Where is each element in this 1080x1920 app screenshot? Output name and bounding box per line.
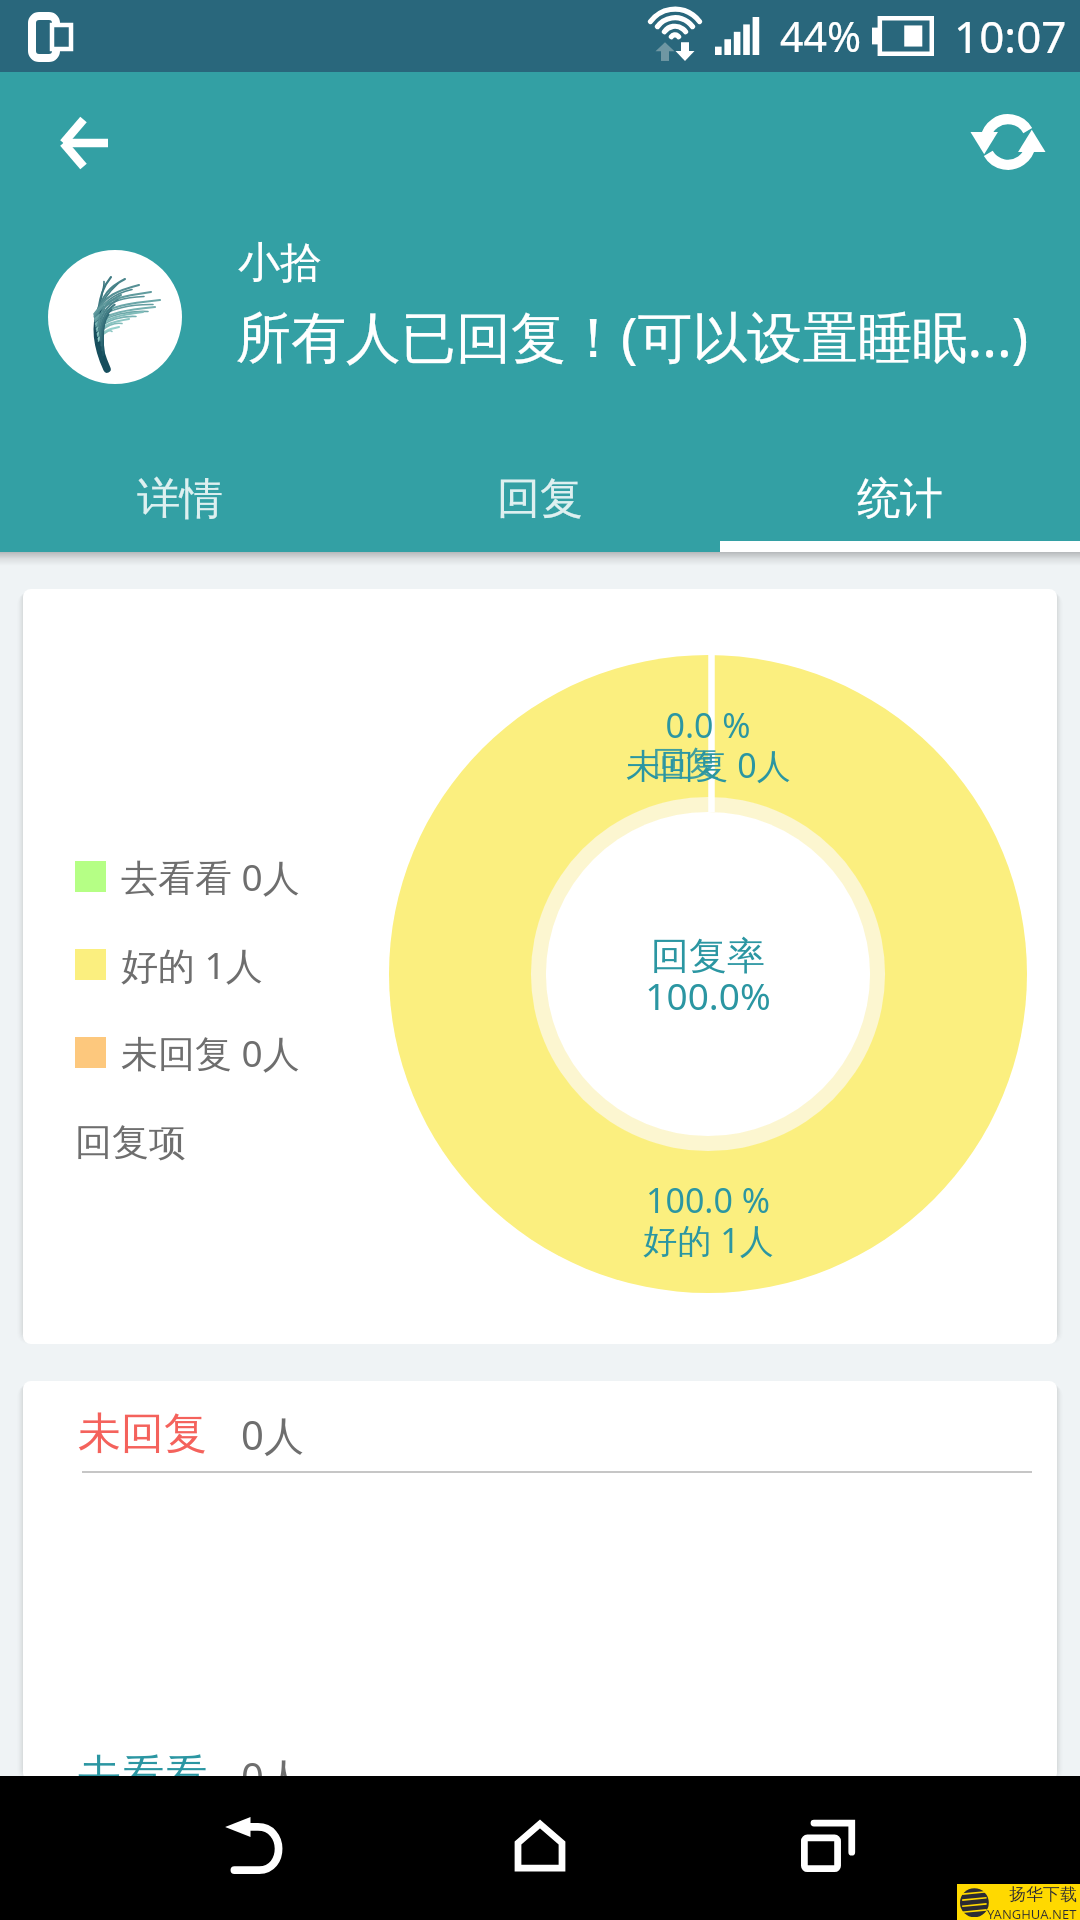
- staticText: 扬华下载: [1009, 1884, 1077, 1905]
- button[interactable]: Recents: [758, 1776, 898, 1916]
- button[interactable]: 统计: [720, 434, 1080, 552]
- button[interactable]: Home: [470, 1776, 610, 1916]
- staticText: 未回复: [78, 1407, 207, 1461]
- button[interactable]: Refresh: [938, 72, 1078, 212]
- button[interactable]: 回复: [360, 434, 720, 552]
- staticText: 所有人已回复！(可以设置睡眠...): [236, 298, 1029, 373]
- staticText: 未回复 0人: [626, 742, 791, 788]
- staticText: 去看看: [78, 1749, 207, 1781]
- button[interactable]: 未回复: [23, 1385, 1057, 1469]
- staticText: 统计: [857, 472, 943, 526]
- staticText: YANGHUA.NET: [987, 1905, 1077, 1920]
- staticText: 100.0 %: [646, 1177, 770, 1223]
- button[interactable]: 去看看: [23, 1727, 1057, 1781]
- staticText: 44%: [780, 8, 861, 64]
- staticText: 100.0%: [645, 970, 771, 1020]
- button[interactable]: Back: [183, 1776, 323, 1916]
- staticText: 0人: [241, 1407, 304, 1462]
- staticText: 未回复 0人: [121, 1027, 300, 1078]
- staticText: 小拾: [238, 237, 322, 290]
- staticText: 回复: [652, 742, 720, 785]
- staticText: 0.0 %: [665, 702, 751, 748]
- staticText: 10:07: [954, 6, 1067, 66]
- staticText: 好的 1人: [121, 939, 263, 990]
- staticText: 0人: [241, 1749, 304, 1781]
- button[interactable]: Back: [14, 73, 154, 213]
- staticText: 好的 1人: [643, 1217, 774, 1263]
- staticText: 去看看 0人: [121, 851, 300, 902]
- staticText: 回复率: [651, 932, 765, 980]
- staticText: 回复项: [75, 1119, 186, 1166]
- staticText: 回复: [497, 472, 583, 526]
- staticText: 详情: [137, 472, 223, 526]
- button[interactable]: 详情: [0, 434, 360, 552]
